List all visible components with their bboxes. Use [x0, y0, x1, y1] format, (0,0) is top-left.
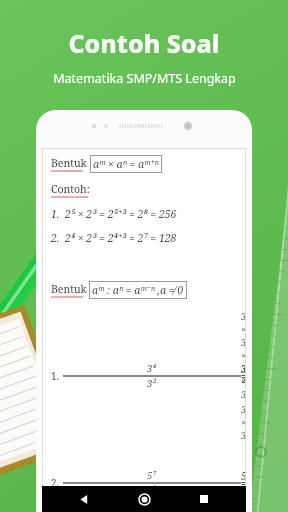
staticText: aᵐ : aⁿ = aᵐ⁻ⁿ ,a ≠ 0: [92, 283, 184, 297]
staticText: Matematika SMP/MTS Lengkap: [53, 70, 236, 87]
staticText: 3⁴: [147, 362, 157, 375]
staticText: 5³: [147, 484, 157, 497]
button[interactable]: Home: [126, 486, 162, 512]
staticText: 3²: [147, 377, 157, 390]
staticText: 5⁷: [147, 469, 157, 482]
staticText: 1. 2⁵ × 2³ = 2⁵⁺³ = 2⁸ = 256: [51, 207, 177, 221]
staticText: Bentuk: [51, 282, 87, 296]
staticText: Bentuk: [51, 156, 87, 170]
staticText: 2. 2⁴ × 2³ = 2⁴⁺³ = 2⁷ = 128: [51, 231, 177, 245]
staticText: Contoh Soal: [68, 26, 220, 60]
staticText: Contoh:: [51, 182, 90, 196]
staticText: aᵐ × aⁿ = aᵐ⁺ⁿ: [93, 157, 159, 171]
staticText: 1.: [51, 369, 60, 383]
button[interactable]: Recents: [186, 486, 222, 512]
staticText: 2.: [51, 476, 60, 490]
button[interactable]: Back: [66, 486, 102, 512]
